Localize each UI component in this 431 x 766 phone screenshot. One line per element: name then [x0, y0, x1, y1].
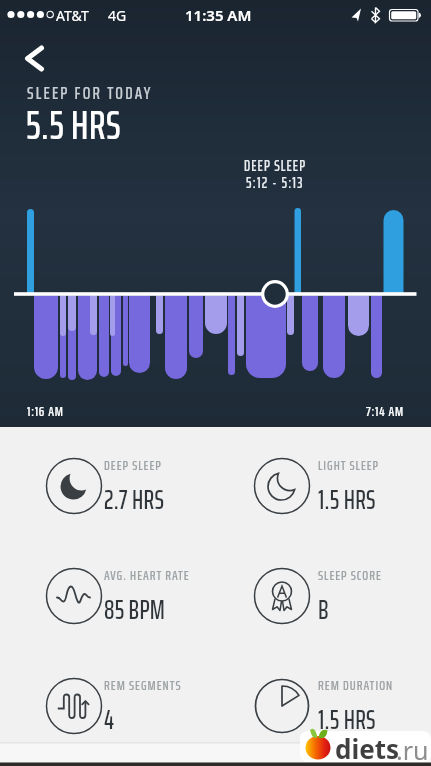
staticText: 4 [104, 699, 115, 740]
staticText: 11:35 AM [185, 5, 252, 25]
staticText: .ru [396, 733, 429, 766]
staticText: LIGHT SLEEP [318, 454, 380, 476]
staticText: DEEP SLEEP [244, 154, 307, 178]
staticText: 4G [108, 6, 127, 25]
staticText: 2.7 HRS [104, 479, 165, 520]
staticText: 1:16 AM [27, 400, 64, 422]
staticText: diets [335, 731, 400, 766]
staticText: REM DURATION [318, 674, 394, 696]
staticText: SLEEP SCORE [318, 564, 382, 586]
staticText: SLEEP FOR TODAY [27, 79, 153, 107]
staticText: AT&T [56, 6, 89, 25]
staticText: 5.5 HRS [26, 94, 122, 157]
button[interactable]: diets [335, 731, 400, 766]
staticText: REM SEGMENTS [104, 674, 182, 696]
staticText: DEEP SLEEP [104, 454, 162, 476]
staticText: 1.5 HRS [318, 479, 376, 520]
staticText: 1.5 HRS [318, 699, 376, 740]
staticText: AVG. HEART RATE [104, 564, 190, 586]
staticText: 5:12 - 5:13 [246, 171, 304, 195]
button[interactable] [16, 38, 58, 78]
staticText: 7:14 AM [366, 400, 404, 422]
staticText: B [318, 589, 329, 630]
staticText: 85 BPM [104, 589, 166, 630]
